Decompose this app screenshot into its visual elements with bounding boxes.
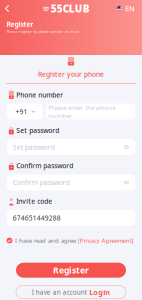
staticText: Register: [6, 19, 33, 29]
button[interactable]: Please enter the phone number: [46, 104, 135, 120]
staticText: Register your phone: [38, 69, 104, 79]
staticText: Set password: [13, 142, 55, 152]
staticText: +91: [15, 107, 27, 116]
staticText: I have an account: [32, 288, 87, 296]
staticText: Please register by phone number or email: [6, 29, 79, 34]
staticText: Confirm password: [13, 178, 70, 187]
button[interactable]: Register your phone: [0, 55, 142, 83]
staticText: Invite code: [16, 197, 52, 206]
staticText: EN: [125, 3, 135, 13]
button[interactable]: Country code +91: [7, 104, 43, 120]
staticText: [Privacy Agreement]: [78, 236, 134, 244]
button[interactable]: Register: [16, 263, 126, 278]
staticText: Login: [89, 287, 110, 297]
button[interactable]: Back: [0, 0, 15, 17]
staticText: 674651449288: [13, 213, 61, 223]
staticText: I have read and agree: [15, 236, 76, 244]
staticText: 55CLUB: [51, 2, 90, 15]
staticText: Confirm password: [16, 161, 73, 170]
button[interactable]: Set password: [7, 139, 135, 155]
button[interactable]: I have read and agree: [0, 226, 142, 249]
button[interactable]: Language: [117, 0, 142, 18]
staticText: Set password: [16, 126, 59, 135]
staticText: Register: [53, 264, 89, 276]
staticText: Please enter the phone number: [48, 103, 115, 120]
button[interactable]: 674651449288: [7, 210, 135, 226]
button[interactable]: Confirm password: [7, 174, 135, 190]
button[interactable]: I have an account: [16, 286, 126, 299]
staticText: Phone number: [16, 90, 63, 99]
